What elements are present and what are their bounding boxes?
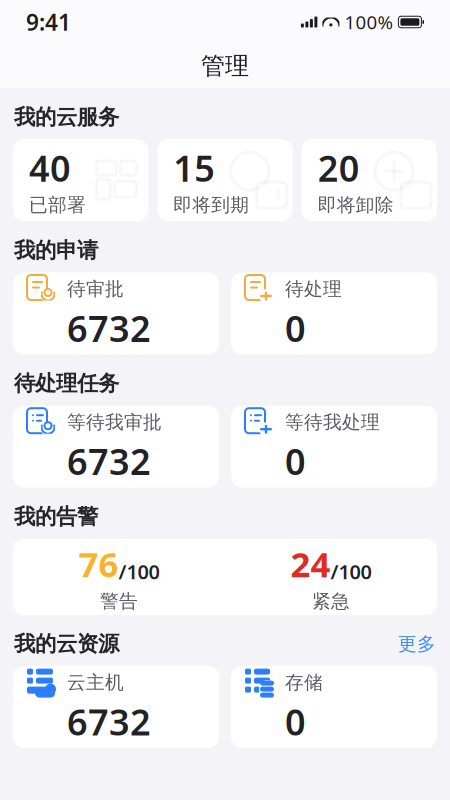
staticText: ! [276,183,281,206]
staticText: 等待我审批 [67,411,162,434]
staticText: 更多 [398,632,436,655]
button[interactable]: 存储 [231,666,437,748]
staticText: 9:41 [26,7,71,37]
staticText: 6732 [67,304,151,352]
staticText: 等待我处理 [285,411,380,434]
staticText: 0 [285,437,306,485]
staticText: 76 [78,541,118,587]
button[interactable]: 等待我处理 [231,406,437,488]
staticText: /100 [118,558,159,585]
staticText: 待审批 [67,277,124,300]
staticText: 15 [173,144,215,192]
staticText: 0 [285,698,306,745]
staticText: /100 [330,558,371,585]
staticText: 100% [344,10,393,34]
staticText: 待处理 [285,277,342,300]
staticText: 6732 [67,437,151,485]
staticText: 6732 [67,698,151,745]
staticText: 即将到期 [173,194,249,216]
button[interactable]: 待处理 [231,272,437,354]
button[interactable]: 20 [302,139,437,221]
button[interactable]: ! [157,139,293,221]
button[interactable]: 40 [13,139,148,221]
staticText: 24 [290,541,330,587]
staticText: 20 [318,144,360,192]
staticText: 我的申请 [14,237,98,263]
button[interactable]: 等待我审批 [13,406,219,488]
staticText: 我的云资源 [14,631,119,657]
staticText: 我的云服务 [14,104,119,130]
staticText: 待处理任务 [14,370,119,397]
staticText: 0 [285,304,306,352]
staticText: 紧急 [312,590,350,613]
button[interactable]: 云主机 [13,666,219,748]
staticText: 已部署 [29,194,86,216]
button[interactable]: 待审批 [13,272,219,354]
staticText: 40 [29,144,71,192]
staticText: 云主机 [67,671,124,694]
button[interactable]: 更多 [398,632,436,655]
staticText: 我的告警 [14,504,98,530]
staticText: 警告 [100,590,138,613]
staticText: 存储 [285,671,323,694]
staticText: 即将卸除 [318,194,394,216]
staticText: 管理 [201,51,249,81]
